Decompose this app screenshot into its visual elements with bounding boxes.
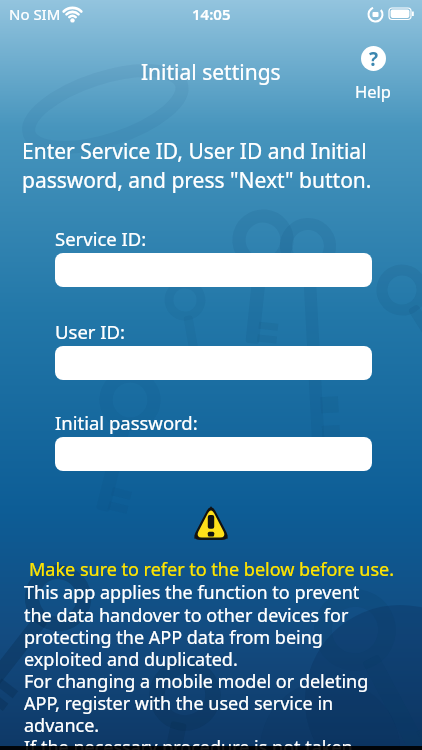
button[interactable]: ? bbox=[352, 46, 394, 102]
button[interactable] bbox=[55, 437, 372, 471]
staticText: ? bbox=[369, 46, 379, 71]
staticText: This app applies the function to prevent… bbox=[24, 580, 369, 750]
staticText: Help bbox=[355, 80, 391, 102]
staticText: Initial settings bbox=[141, 58, 281, 87]
staticText: Service ID: bbox=[55, 226, 147, 251]
staticText: User ID: bbox=[55, 319, 126, 344]
button[interactable] bbox=[55, 253, 372, 287]
button[interactable] bbox=[55, 346, 372, 380]
staticText: Initial password: bbox=[55, 410, 198, 435]
staticText: 14:05 bbox=[192, 4, 231, 24]
staticText: Enter Service ID, User ID and Initial pa… bbox=[22, 137, 372, 195]
staticText: No SIM bbox=[9, 4, 61, 24]
staticText: Make sure to refer to the below before u… bbox=[29, 557, 394, 582]
